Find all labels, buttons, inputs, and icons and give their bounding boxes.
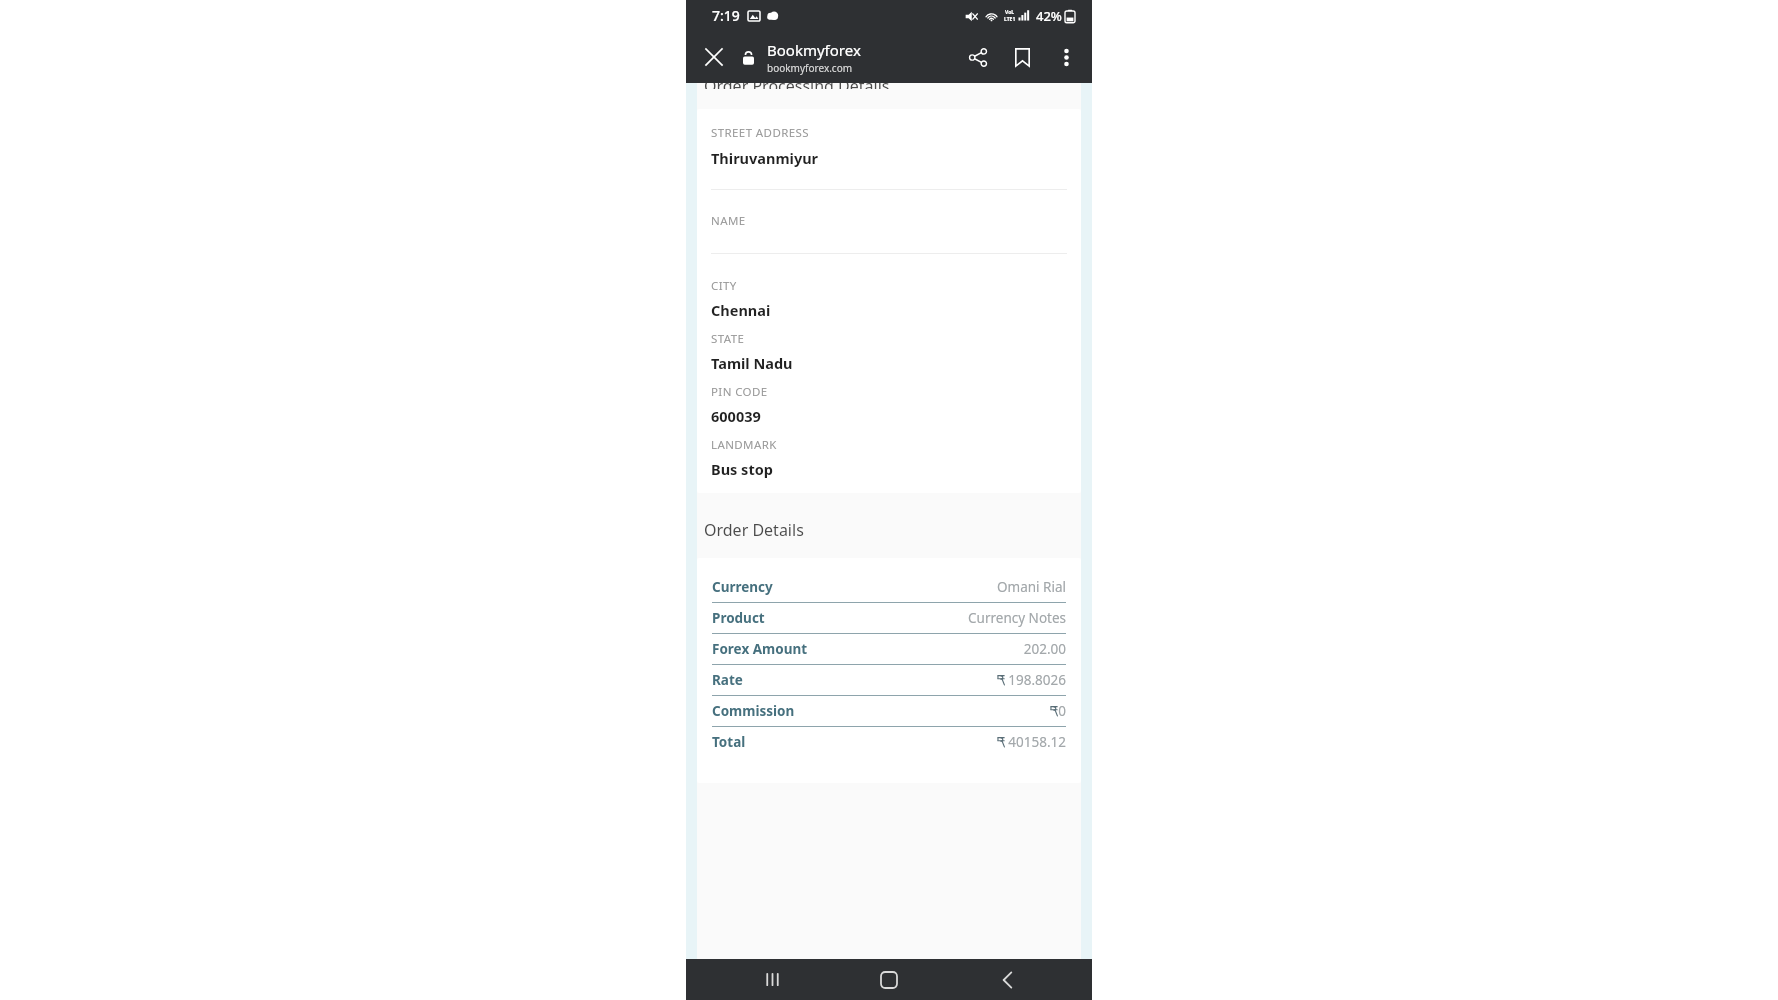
staticText: STREET ADDRESS	[711, 125, 809, 141]
staticText: VoL	[1005, 9, 1015, 16]
button[interactable]: Back	[975, 959, 1039, 1000]
staticText: Tamil Nadu	[711, 353, 793, 373]
staticText: Order Processing Details	[704, 83, 890, 89]
button[interactable]: Rate	[712, 665, 1066, 695]
staticText: CITY	[711, 278, 737, 294]
button[interactable]: Close	[694, 37, 734, 77]
button[interactable]: Currency	[712, 572, 1066, 602]
button[interactable]: More options	[1044, 35, 1088, 79]
staticText: bookmyforex.com	[767, 61, 853, 75]
staticText: 0	[1058, 702, 1066, 720]
staticText: 7:19	[712, 6, 740, 25]
button[interactable]: Product	[712, 603, 1066, 633]
button[interactable]: Total	[712, 727, 1066, 757]
staticText: Currency	[712, 578, 996, 596]
staticText: STATE	[711, 331, 745, 347]
button[interactable]: Forex Amount	[712, 634, 1066, 664]
staticText: Omani Rial	[996, 578, 1066, 596]
staticText: Chennai	[711, 300, 771, 320]
staticText: Order Details	[704, 519, 804, 541]
staticText: Thiruvanmiyur	[711, 148, 819, 168]
staticText: Currency Notes	[968, 609, 1066, 627]
staticText: LTE1	[1004, 16, 1016, 23]
staticText: Product	[712, 609, 968, 627]
staticText: 198.8026	[1008, 671, 1066, 689]
staticText: 600039	[711, 406, 761, 426]
staticText: Rate	[712, 671, 997, 689]
staticText: Total	[712, 733, 997, 751]
staticText: Bus stop	[711, 459, 773, 479]
staticText: NAME	[711, 213, 746, 229]
staticText: Commission	[712, 702, 1050, 720]
staticText: Forex Amount	[712, 640, 1023, 658]
staticText: 42%	[1036, 7, 1062, 25]
button[interactable]: Home	[857, 959, 921, 1000]
staticText: LANDMARK	[711, 437, 777, 453]
button[interactable]: Recent apps	[740, 959, 804, 1000]
staticText: 202.00	[1023, 640, 1066, 658]
staticText: 40158.12	[1008, 733, 1066, 751]
button[interactable]: Bookmark	[1000, 35, 1044, 79]
button[interactable]: Share	[956, 35, 1000, 79]
staticText: Bookmyforex	[767, 40, 861, 60]
button[interactable]: Commission	[712, 696, 1066, 726]
staticText: PIN CODE	[711, 384, 768, 400]
